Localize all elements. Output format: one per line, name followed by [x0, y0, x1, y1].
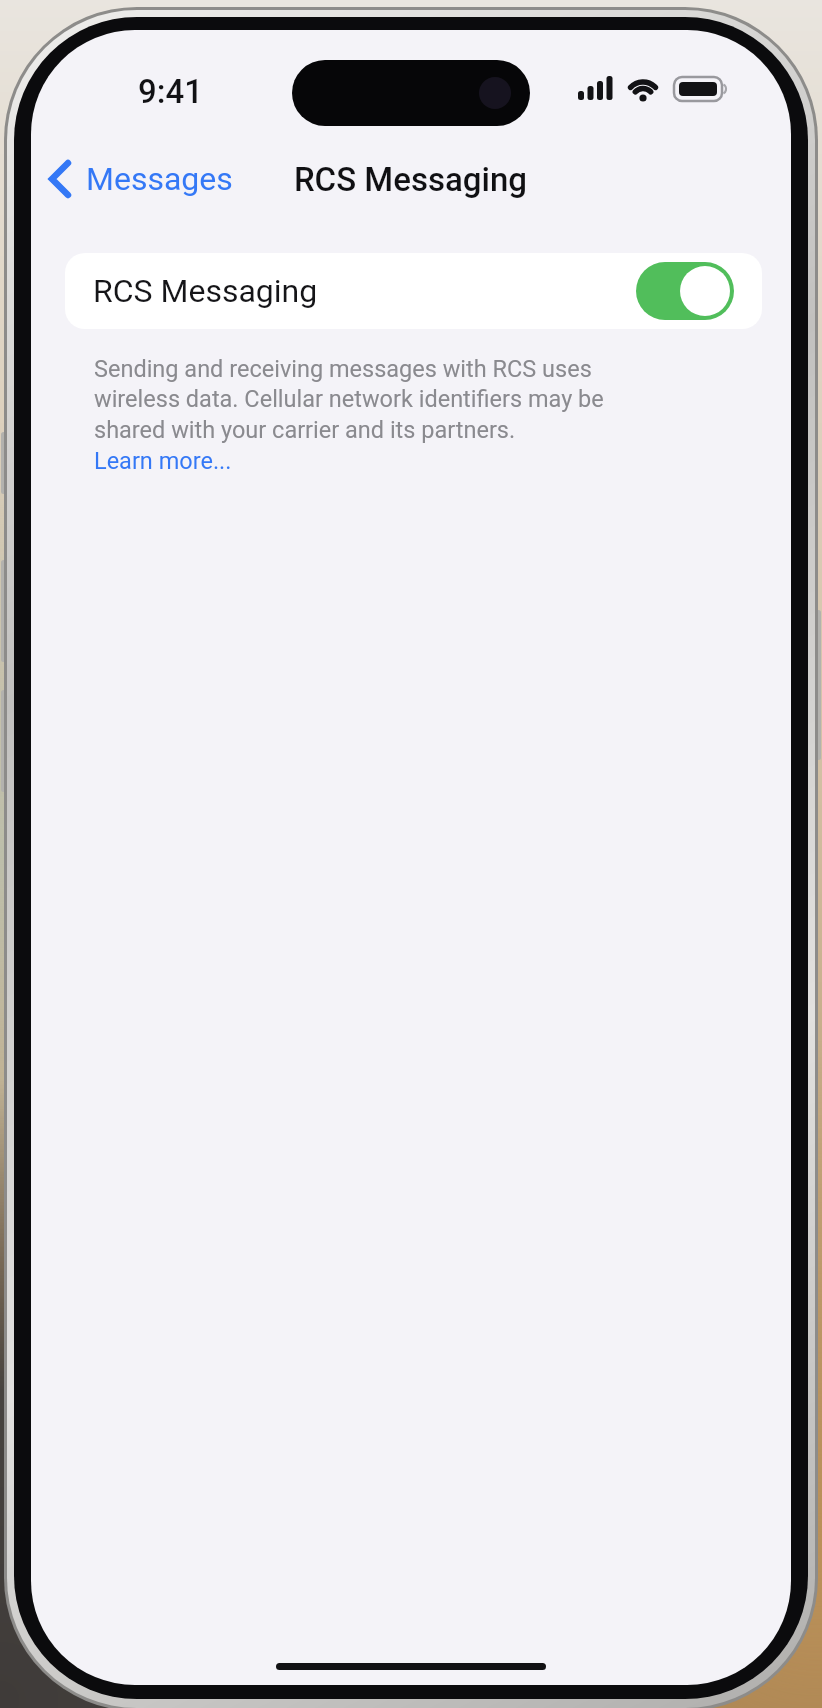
staticText: 9:41 [138, 72, 204, 111]
button[interactable]: RCS Messaging [93, 253, 734, 329]
button[interactable] [636, 262, 734, 320]
staticText: RCS Messaging [93, 272, 318, 310]
staticText: Messages [86, 160, 233, 198]
staticText: RCS Messaging [294, 160, 528, 199]
button[interactable]: Messages [48, 158, 233, 200]
button[interactable]: Sending and receiving messages with RCS … [94, 355, 714, 475]
